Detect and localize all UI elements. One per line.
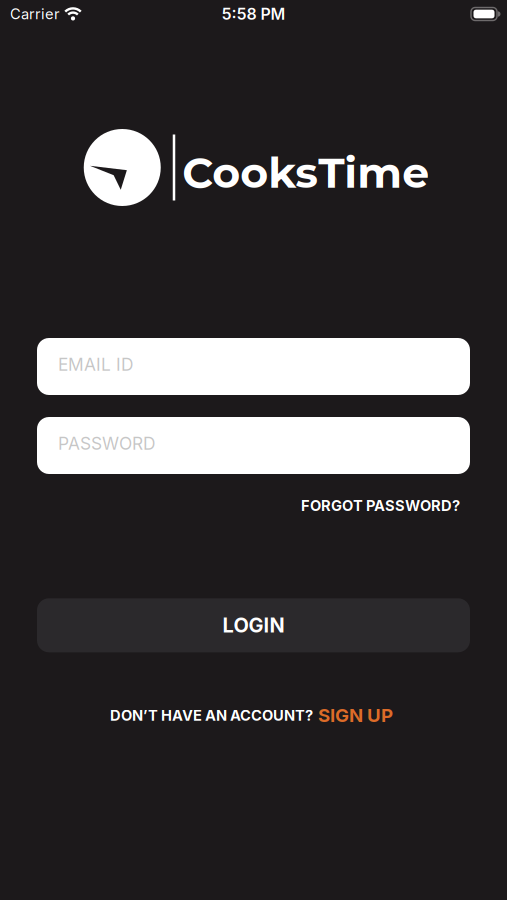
- staticText: FORGOT PASSWORD?: [301, 497, 460, 514]
- button[interactable]: EMAIL ID: [37, 338, 470, 395]
- staticText: SIGN UP: [318, 704, 393, 726]
- staticText: Carrier: [10, 5, 60, 23]
- staticText: EMAIL ID: [58, 354, 134, 375]
- staticText: CooksTime: [182, 146, 429, 198]
- staticText: DON’T HAVE AN ACCOUNT?: [110, 707, 313, 724]
- button[interactable]: FORGOT PASSWORD?: [301, 497, 460, 514]
- staticText: LOGIN: [222, 613, 284, 637]
- button[interactable]: LOGIN: [37, 598, 470, 652]
- button[interactable]: PASSWORD: [37, 417, 470, 474]
- staticText: PASSWORD: [58, 433, 156, 454]
- staticText: 5:58 PM: [221, 5, 285, 23]
- button[interactable]: SIGN UP: [318, 704, 393, 726]
